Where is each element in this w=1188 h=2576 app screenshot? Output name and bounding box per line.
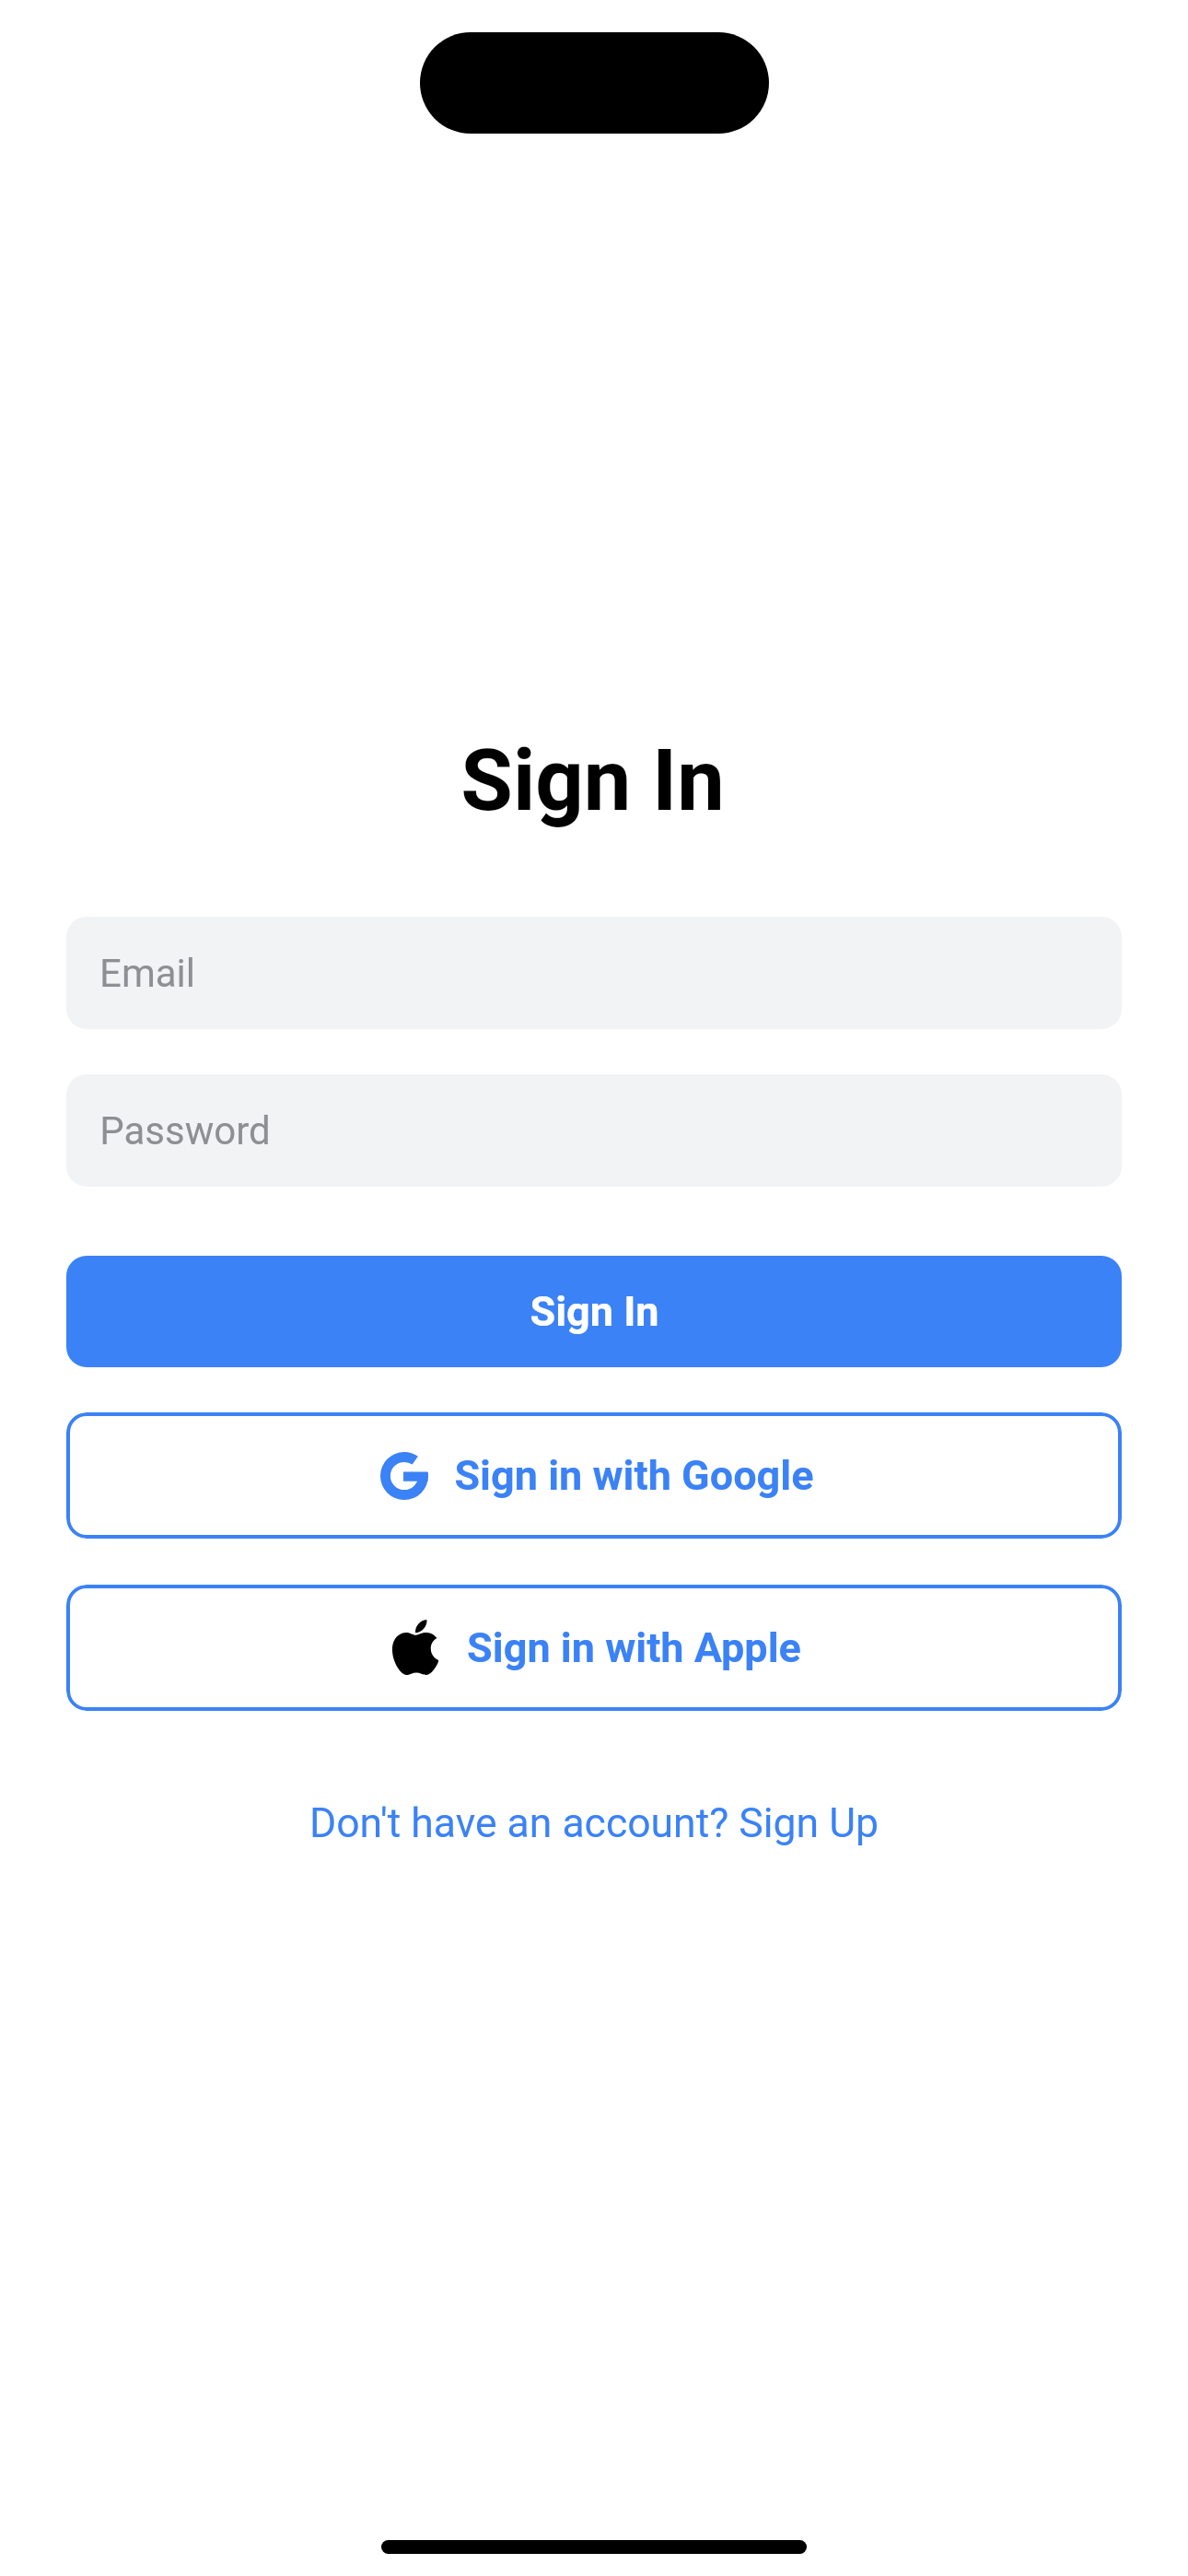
button[interactable]: Google logo [66, 1412, 1122, 1539]
button[interactable]: Email [66, 917, 1122, 1029]
staticText: Email [99, 951, 195, 996]
staticText: Sign In [460, 732, 725, 831]
button[interactable]: Don't have an account? Sign Up [300, 1794, 888, 1853]
staticText: Sign in with Google [454, 1451, 814, 1500]
staticText: Don't have an account? Sign Up [309, 1799, 879, 1847]
button[interactable]: Sign In [66, 1256, 1122, 1367]
button[interactable]: Apple logo [66, 1585, 1122, 1711]
staticText: Password [99, 1108, 271, 1153]
button[interactable]: Password [66, 1074, 1122, 1187]
other: Apple logo [392, 1620, 438, 1676]
staticText: Sign In [530, 1287, 659, 1336]
other: Google logo [380, 1452, 428, 1500]
staticText: Sign in with Apple [467, 1623, 801, 1672]
